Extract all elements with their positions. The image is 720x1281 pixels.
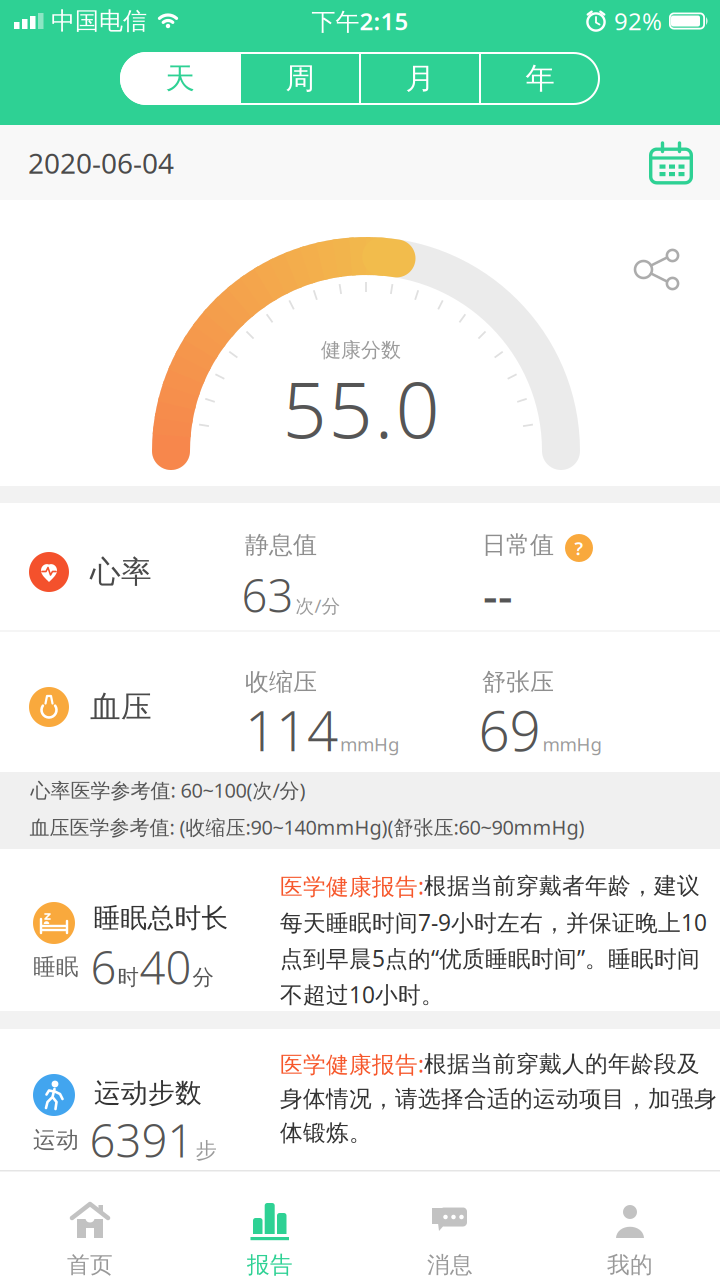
staticText: 日常值 xyxy=(482,530,554,560)
staticText: 周 xyxy=(285,60,314,96)
staticText: 69 xyxy=(478,694,540,766)
staticText: 次/分 xyxy=(295,593,340,618)
staticText: 身体情况，请选择合适的运动项目，加强身 xyxy=(280,1085,717,1113)
staticText: 63 xyxy=(241,565,293,625)
staticText: 114 xyxy=(245,694,338,766)
button[interactable]: 周 xyxy=(240,52,360,105)
staticText: 根据当前穿戴人的年龄段及 xyxy=(424,1050,700,1078)
staticText: mmHg xyxy=(340,732,399,756)
staticText: 运动步数 xyxy=(94,1077,202,1109)
button[interactable]: 日常值说明 xyxy=(565,534,593,562)
staticText: 运动 xyxy=(33,1126,79,1154)
button[interactable]: 报告 xyxy=(180,1170,360,1280)
button[interactable]: 月 xyxy=(360,52,480,105)
staticText: 时 xyxy=(117,964,138,991)
staticText: 体锻炼。 xyxy=(280,1119,372,1147)
button[interactable]: 选择日期 xyxy=(0,125,720,200)
staticText: 月 xyxy=(405,60,434,96)
staticText: 步 xyxy=(195,1137,216,1164)
staticText: 收缩压 xyxy=(245,667,317,697)
staticText: 年 xyxy=(525,60,554,96)
staticText: 6391 xyxy=(89,1110,193,1170)
staticText: 分 xyxy=(192,964,213,991)
staticText: 不超过10小时。 xyxy=(280,979,444,1009)
staticText: 血压 xyxy=(90,688,152,726)
staticText: 天 xyxy=(165,60,194,96)
staticText: ? xyxy=(574,536,583,560)
staticText: 静息值 xyxy=(245,530,317,560)
staticText: 根据当前穿戴者年龄，建议 xyxy=(424,872,700,900)
staticText: 每天睡眠时间7-9小时左右，并保证晚上10 xyxy=(280,907,707,937)
button[interactable]: 消息 xyxy=(360,1170,540,1280)
staticText: 92% xyxy=(614,5,662,37)
staticText: 心率医学参考值: 60~100(次/分) xyxy=(30,777,305,803)
staticText: 医学健康报告: xyxy=(280,871,424,901)
button[interactable]: 年 xyxy=(480,52,600,105)
staticText: 医学健康报告: xyxy=(280,1049,424,1079)
staticText: 睡眠总时长 xyxy=(93,902,228,934)
staticText: 心率 xyxy=(90,553,152,591)
staticText: 55.0 xyxy=(282,357,439,459)
staticText: 6 xyxy=(90,937,116,997)
button[interactable]: 我的 xyxy=(540,1170,720,1280)
staticText: 报告 xyxy=(247,1251,293,1279)
staticText: mmHg xyxy=(542,732,601,756)
staticText: 血压医学参考值: (收缩压:90~140mmHg)(舒张压:60~90mmHg) xyxy=(29,814,584,840)
staticText: 消息 xyxy=(427,1251,473,1279)
staticText: 40 xyxy=(139,937,191,997)
staticText: -- xyxy=(483,565,513,625)
button[interactable]: 分享 xyxy=(634,248,680,292)
button[interactable]: 首页 xyxy=(0,1170,180,1280)
staticText: 舒张压 xyxy=(482,667,554,697)
staticText: 我的 xyxy=(607,1251,653,1279)
staticText: 2020-06-04 xyxy=(28,144,174,182)
staticText: 睡眠 xyxy=(33,953,79,981)
button[interactable]: 天 xyxy=(120,52,240,105)
staticText: 下午2:15 xyxy=(311,5,408,37)
staticText: 中国电信 xyxy=(51,6,147,36)
staticText: 点到早晨5点的“优质睡眠时间”。睡眠时间 xyxy=(280,943,700,973)
staticText: 首页 xyxy=(67,1251,113,1279)
staticText: 健康分数 xyxy=(321,338,401,362)
